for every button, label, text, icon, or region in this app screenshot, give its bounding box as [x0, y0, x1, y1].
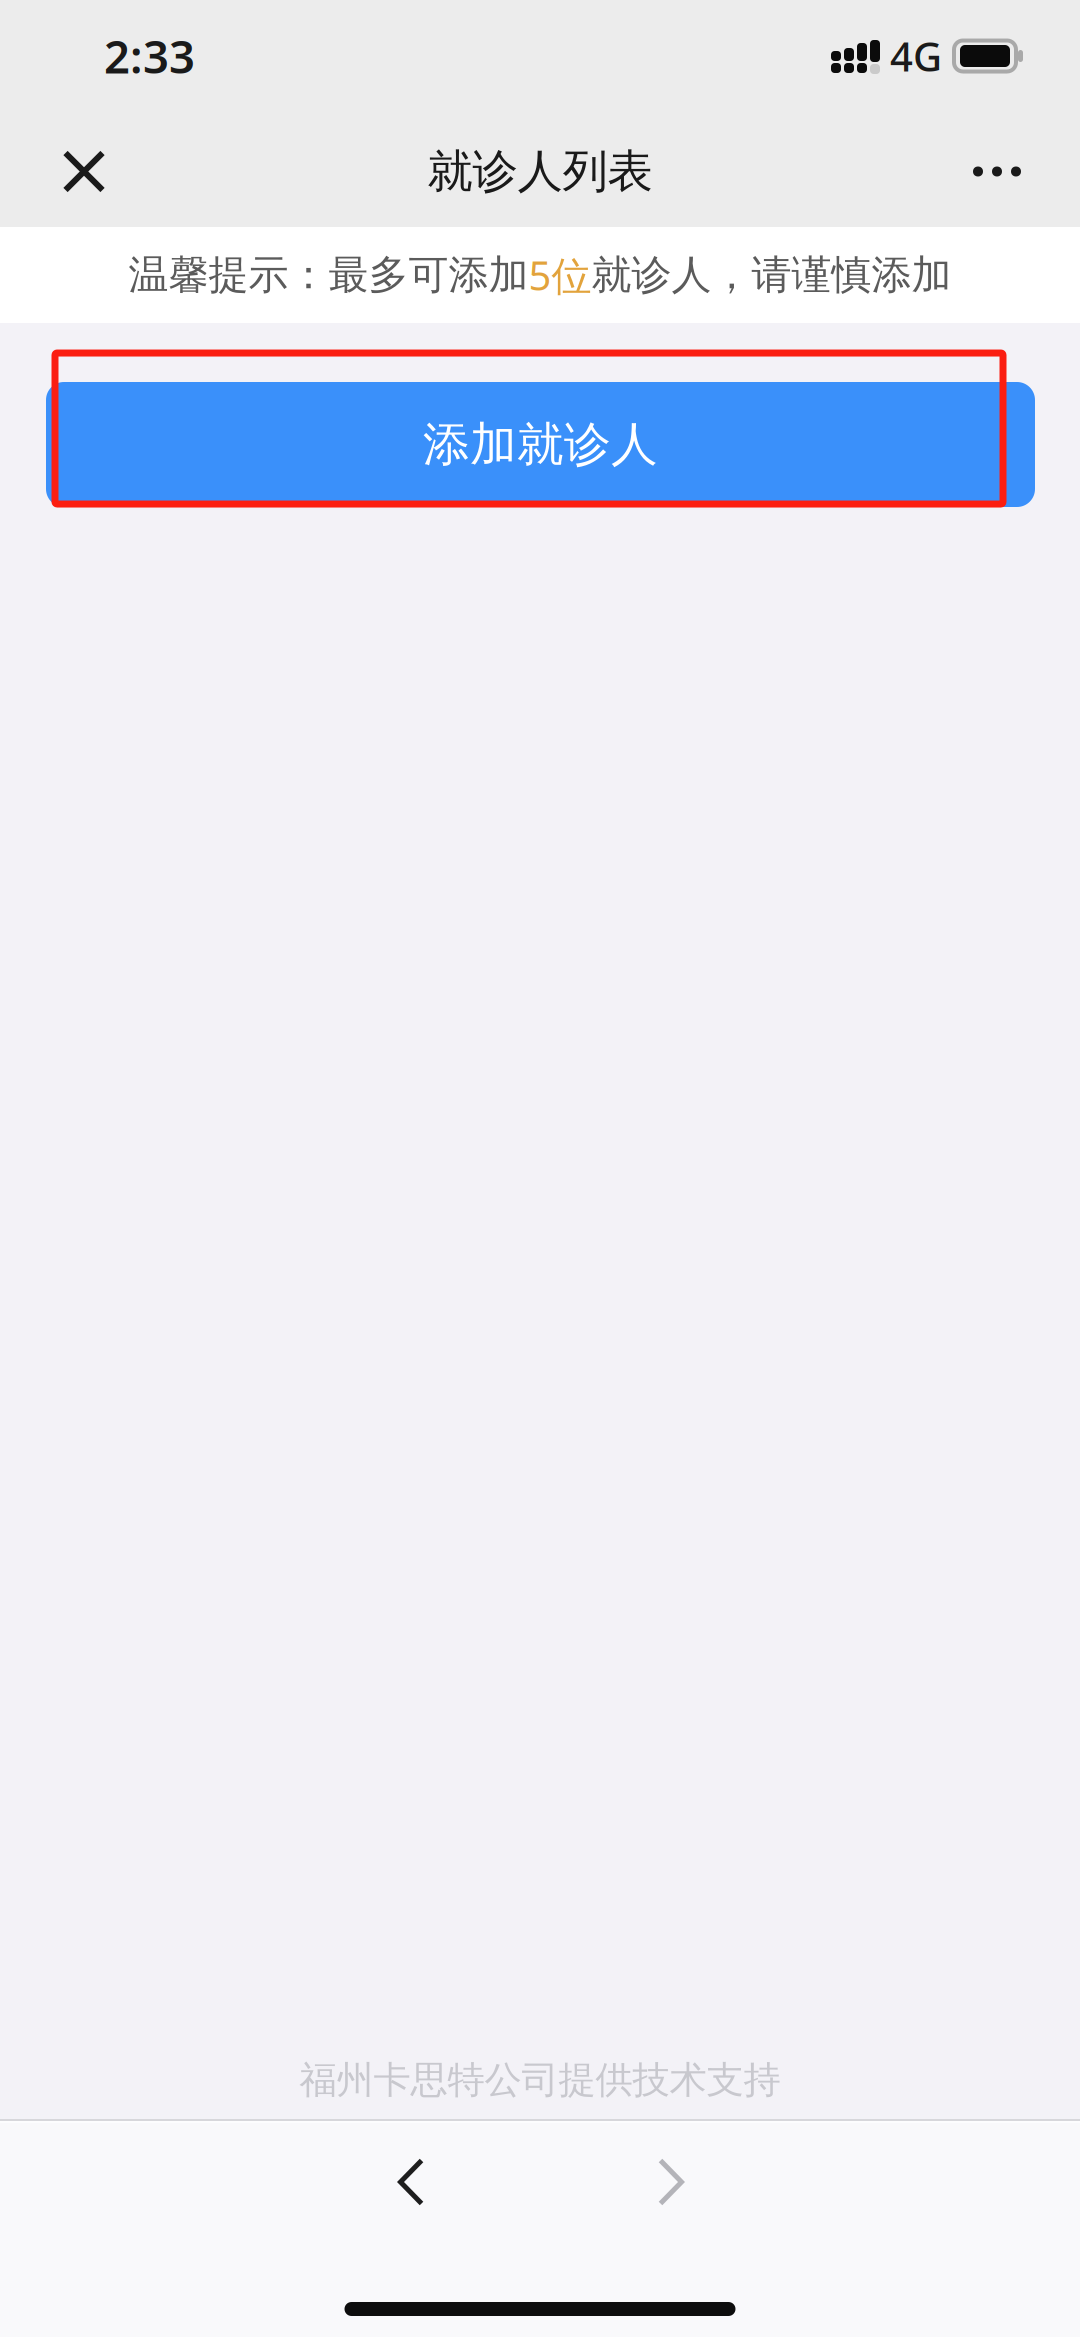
staticText: 就诊人列表 [427, 144, 652, 199]
staticText: 2:33 [104, 26, 195, 86]
staticText: 添加就诊人 [423, 416, 658, 473]
staticText: 就诊人，请谨慎添加 [591, 250, 951, 299]
button[interactable]: 更多 [947, 121, 1047, 221]
staticText: 4G [890, 29, 942, 82]
button[interactable]: 后退 [346, 2123, 476, 2241]
staticText: 福州卡思特公司提供技术支持 [299, 2057, 780, 2103]
button[interactable]: 添加就诊人 [46, 382, 1035, 507]
button[interactable]: 关闭 [34, 121, 134, 221]
button[interactable]: 前进 [606, 2123, 736, 2241]
staticText: 温馨提示：最多可添加 [128, 250, 528, 299]
staticText: 5位 [528, 248, 591, 301]
